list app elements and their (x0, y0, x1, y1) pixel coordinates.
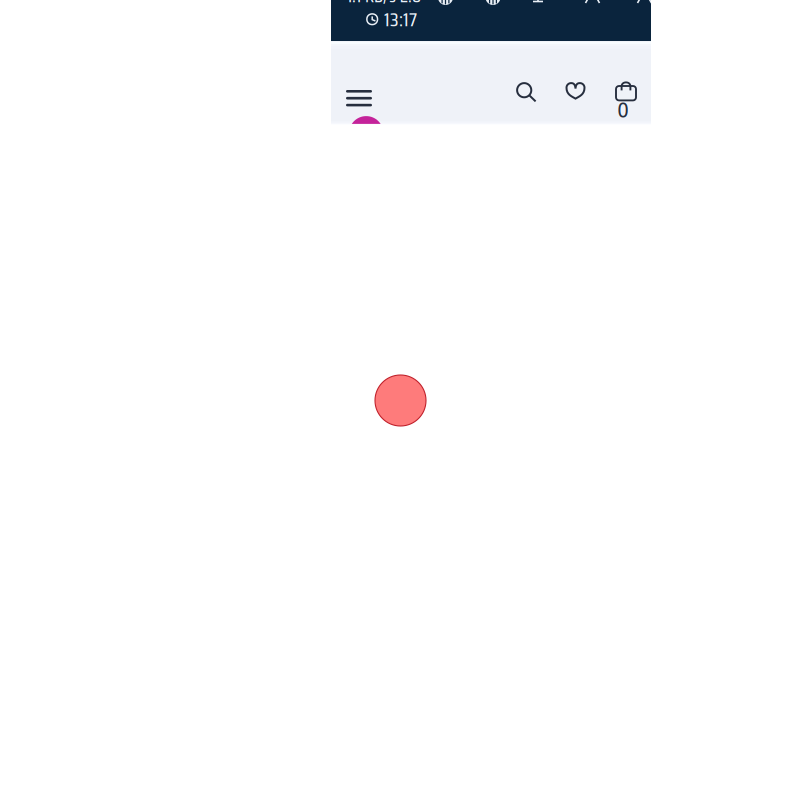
staticText: 13:17 (384, 3, 417, 35)
button[interactable]: Menu (346, 90, 372, 106)
staticText: 1.1 KB/s 2:8 (347, 0, 421, 10)
button[interactable]: Wishlist (566, 82, 585, 99)
staticText: 0 (617, 97, 628, 122)
button[interactable]: Search (516, 82, 537, 102)
button[interactable]: Cart, 0 items (616, 81, 636, 117)
